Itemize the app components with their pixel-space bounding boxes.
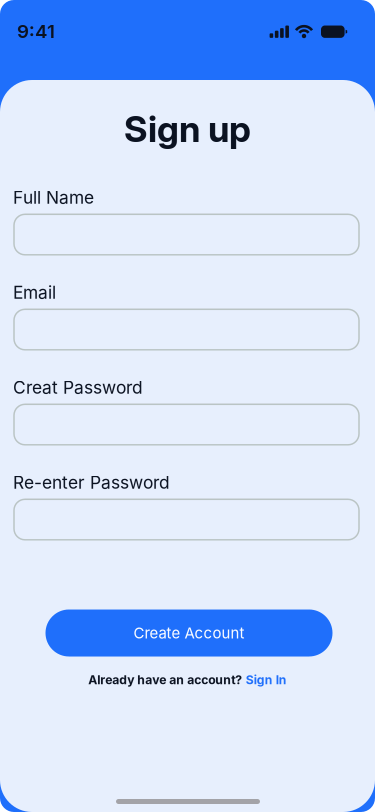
staticText: Sign up	[124, 107, 251, 151]
staticText: 9:41	[17, 20, 55, 43]
button[interactable]: Create Account	[45, 609, 332, 656]
staticText: Creat Password	[13, 377, 143, 398]
button[interactable]: Full Name	[14, 214, 359, 255]
staticText: Email	[13, 282, 56, 303]
button[interactable]: Creat Password	[14, 404, 359, 445]
button[interactable]: Email	[14, 309, 359, 350]
staticText: Create Account	[133, 624, 244, 642]
staticText: Re-enter Password	[13, 472, 170, 493]
staticText: Already have an account?	[88, 672, 242, 687]
staticText: Sign In	[246, 672, 287, 687]
button[interactable]: Re-enter Password	[14, 499, 359, 540]
button[interactable]: Sign In	[246, 672, 287, 687]
staticText: Full Name	[13, 187, 94, 208]
